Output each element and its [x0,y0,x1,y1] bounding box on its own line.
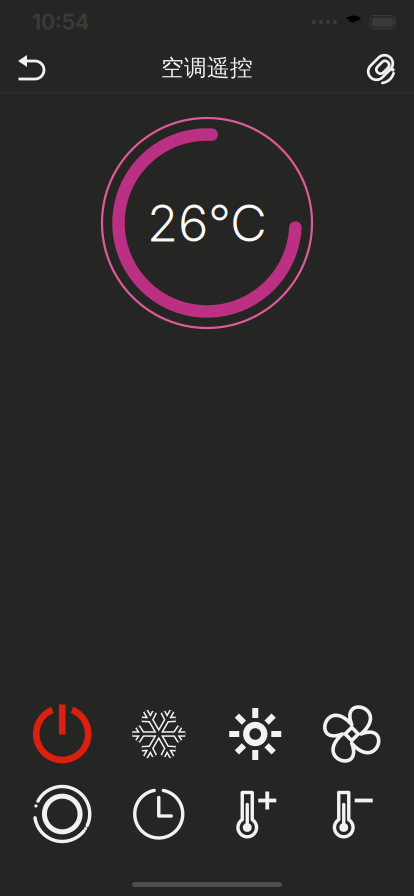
staticText: 26°C [147,192,267,254]
button[interactable]: Back [6,46,58,90]
button[interactable]: Power [14,702,110,766]
button[interactable]: Timer [110,782,207,846]
button[interactable]: Temperature up [207,782,303,846]
button[interactable]: Swing [14,782,110,846]
button[interactable]: Heat [207,702,303,766]
staticText: 空调遥控 [161,54,253,82]
button[interactable]: Temperature down [303,782,400,846]
button[interactable]: Attach [356,46,408,90]
staticText: 10:54 [32,9,89,35]
button[interactable]: Fan speed [303,702,400,766]
button[interactable]: Cool [110,702,207,766]
